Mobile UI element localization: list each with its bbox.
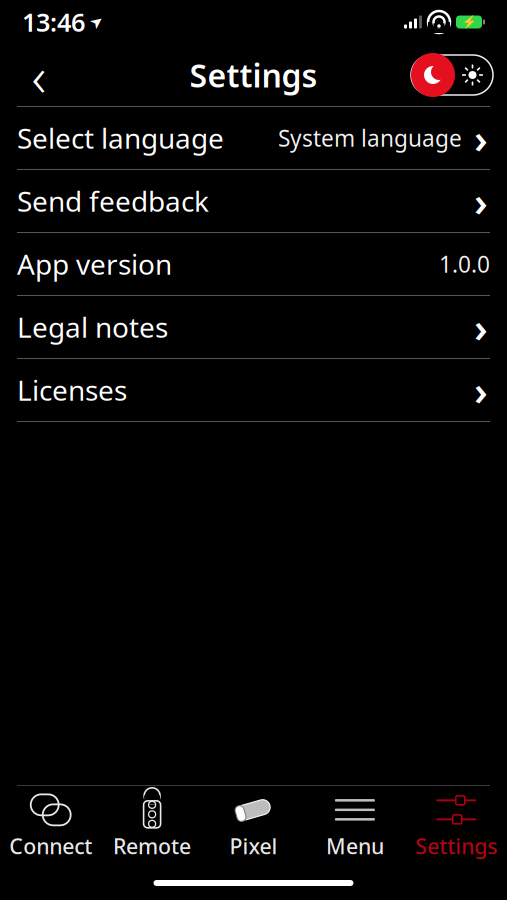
button[interactable]: Menu [304,786,406,866]
staticText: 13:46 [22,5,85,39]
staticText: Settings [189,54,317,96]
staticText: Select language [17,119,224,157]
staticText: Send feedback [17,182,209,220]
button[interactable]: Legal notes [0,296,507,358]
button[interactable]: Licenses [0,359,507,421]
staticText: System language [278,123,462,153]
staticText: › [474,300,488,353]
staticText: 1.0.0 [439,249,490,279]
button[interactable]: Select language [0,107,507,169]
staticText: Legal notes [17,308,168,346]
staticText: Connect [9,832,92,860]
staticText: › [474,111,488,164]
button[interactable]: Send feedback [0,170,507,232]
button[interactable]: Pixel [203,786,304,866]
staticText: › [474,174,488,227]
staticText: › [474,363,488,416]
button[interactable]: Settings [406,786,507,866]
staticText: Remote [113,832,191,860]
button[interactable]: Dark mode enabled, switch theme [409,52,495,98]
staticText: ➤ [90,13,103,31]
button[interactable]: Remote [101,786,203,866]
staticText: Settings [415,832,497,860]
button[interactable]: App version [0,233,507,295]
staticText: Licenses [17,371,127,409]
button[interactable]: Back [12,50,66,100]
staticText: App version [17,245,172,283]
staticText: Menu [326,832,384,860]
button[interactable]: Connect [0,786,101,866]
staticText: Pixel [229,832,277,860]
staticText: ‹ [31,38,46,112]
staticText: ⚡ [461,15,476,29]
